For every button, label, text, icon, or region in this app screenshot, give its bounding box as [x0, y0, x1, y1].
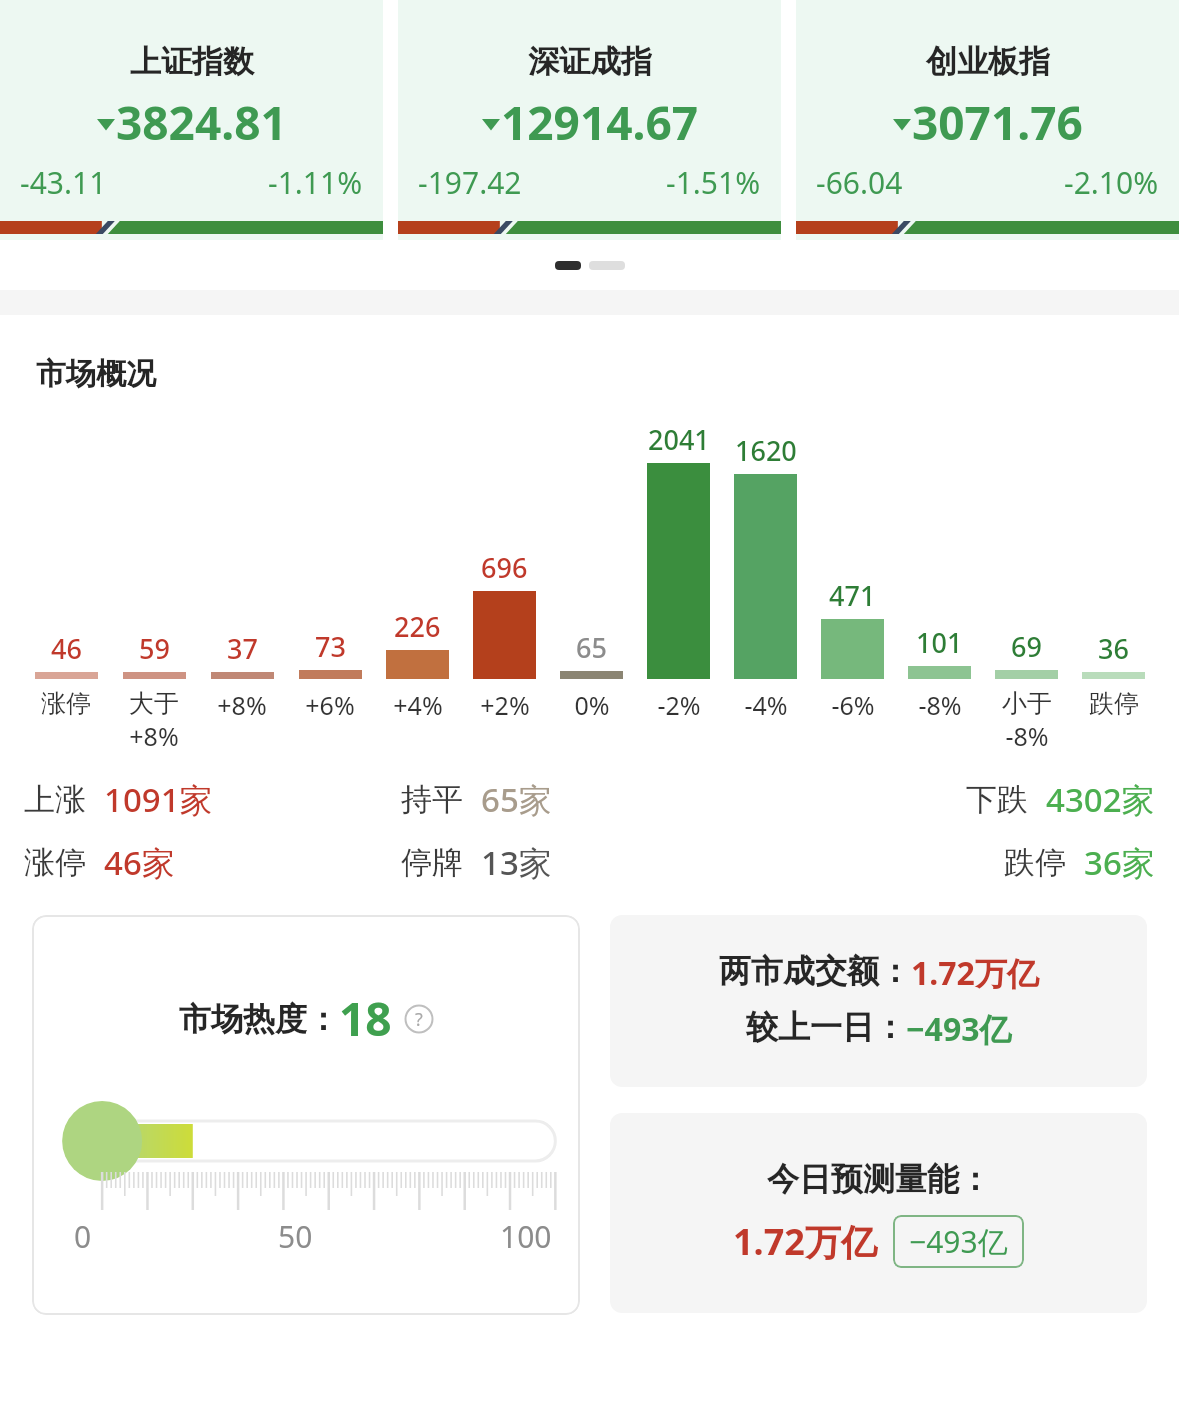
- staticText: -197.42: [418, 162, 522, 203]
- staticText: 18: [339, 987, 392, 1050]
- staticText: 上涨: [24, 780, 86, 819]
- staticText: +4%: [393, 688, 443, 722]
- staticText: 上证指数: [130, 42, 254, 81]
- staticText: 3824.81: [116, 91, 287, 154]
- staticText: -1.51%: [666, 162, 761, 203]
- staticText: +8%: [129, 719, 179, 753]
- staticText: 65: [576, 629, 607, 666]
- staticText: 226: [394, 608, 441, 645]
- button[interactable]: 两市成交额：: [610, 915, 1147, 1087]
- staticText: 小于: [1002, 688, 1052, 719]
- button[interactable]: 上证指数: [0, 0, 383, 240]
- staticText: 停牌: [401, 843, 463, 882]
- button[interactable]: 说明: [404, 1004, 434, 1034]
- staticText: 跌停: [1004, 843, 1066, 882]
- staticText: 73: [315, 628, 346, 665]
- staticText: 50: [278, 1216, 313, 1257]
- staticText: 37: [227, 630, 258, 667]
- staticText: -8%: [918, 688, 962, 722]
- staticText: -1.11%: [268, 162, 363, 203]
- staticText: 696: [481, 549, 528, 586]
- staticText: -43.11: [20, 162, 107, 203]
- staticText: 两市成交额：: [719, 951, 911, 991]
- staticText: 1091家: [104, 777, 213, 822]
- staticText: −493亿: [906, 1007, 1012, 1051]
- staticText: 较上一日：: [746, 1007, 906, 1047]
- staticText: 跌停: [1089, 688, 1139, 719]
- staticText: −493亿: [909, 1221, 1008, 1262]
- staticText: 471: [829, 577, 876, 614]
- staticText: 0%: [574, 688, 610, 722]
- staticText: 59: [139, 630, 170, 667]
- staticText: -66.04: [816, 162, 903, 203]
- staticText: 36家: [1084, 840, 1155, 885]
- staticText: 12914.67: [501, 91, 699, 154]
- staticText: 今日预测量能：: [767, 1159, 991, 1199]
- staticText: 46家: [104, 840, 175, 885]
- staticText: +6%: [305, 688, 355, 722]
- staticText: -8%: [1005, 719, 1049, 753]
- staticText: 100: [500, 1216, 552, 1257]
- staticText: 1620: [735, 432, 797, 469]
- staticText: 13家: [481, 840, 552, 885]
- button[interactable]: 创业板指: [796, 0, 1179, 240]
- staticText: ?: [415, 1007, 423, 1032]
- staticText: 2041: [648, 421, 710, 458]
- button[interactable]: 深证成指: [398, 0, 781, 240]
- button[interactable]: 市场热度：: [32, 915, 580, 1315]
- staticText: 大于: [129, 688, 179, 719]
- staticText: 69: [1011, 628, 1042, 665]
- staticText: 深证成指: [528, 42, 652, 81]
- staticText: 3071.76: [912, 91, 1083, 154]
- staticText: -6%: [831, 688, 875, 722]
- staticText: 1.72万亿: [911, 951, 1039, 995]
- staticText: 4302家: [1046, 777, 1155, 822]
- staticText: 1.72万亿: [733, 1217, 877, 1266]
- staticText: -4%: [744, 688, 788, 722]
- staticText: 市场概况: [36, 355, 156, 393]
- staticText: 持平: [401, 780, 463, 819]
- staticText: -2.10%: [1064, 162, 1159, 203]
- staticText: 36: [1098, 630, 1129, 667]
- staticText: 101: [916, 624, 963, 661]
- staticText: 市场热度：: [179, 999, 339, 1039]
- staticText: 涨停: [41, 688, 91, 719]
- staticText: 65家: [481, 777, 552, 822]
- staticText: -2%: [657, 688, 701, 722]
- staticText: +8%: [217, 688, 267, 722]
- staticText: 创业板指: [926, 42, 1050, 81]
- staticText: 下跌: [966, 780, 1028, 819]
- staticText: 46: [51, 630, 82, 667]
- staticText: 涨停: [24, 843, 86, 882]
- staticText: +2%: [480, 688, 530, 722]
- button[interactable]: 今日预测量能：: [610, 1113, 1147, 1313]
- staticText: 0: [74, 1216, 92, 1257]
